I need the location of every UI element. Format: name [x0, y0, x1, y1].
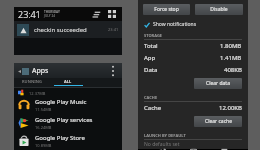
staticText: RUNNING [22, 79, 42, 84]
staticText: Disable [210, 6, 228, 13]
staticText: 1.80MB [220, 42, 242, 50]
staticText: ALL [64, 79, 72, 84]
button[interactable]: Show notifications [138, 20, 248, 29]
staticText: Force stop [154, 6, 179, 13]
staticText: Data [144, 66, 158, 74]
staticText: 11.54MB [35, 107, 52, 112]
staticText: Clear data [206, 80, 230, 87]
button[interactable]: Navigate up [17, 65, 29, 77]
button[interactable]: Recent apps [217, 149, 231, 150]
staticText: 10.89MB [35, 143, 52, 148]
button[interactable]: Back [155, 149, 169, 150]
staticText: 408KB [224, 66, 242, 74]
button[interactable]: Disable [195, 4, 243, 15]
staticText: App [144, 54, 156, 62]
staticText: Google Play Store [35, 134, 85, 142]
staticText: 12.37MB [29, 91, 46, 96]
button[interactable]: 12.37MB [14, 88, 122, 96]
button[interactable]: Quick settings [106, 8, 118, 20]
button[interactable]: Google Play Music [14, 96, 122, 114]
button[interactable]: Google Play services [14, 114, 122, 132]
button[interactable]: RUNNING [14, 78, 50, 87]
button[interactable]: More options [107, 65, 119, 77]
staticText: 1.41MB [220, 54, 242, 62]
staticText: 23:41 [108, 27, 119, 32]
staticText: Show notifications [153, 21, 197, 28]
staticText: THURSDAY [44, 10, 60, 14]
staticText: 23:41 [18, 8, 41, 20]
button[interactable]: Clear all notifications [90, 8, 102, 20]
staticText: Apps [32, 66, 49, 76]
staticText: checkin succeeded [34, 26, 87, 34]
staticText: STORAGE [144, 33, 163, 38]
staticText: CACHE [144, 95, 158, 100]
button[interactable]: ALL [50, 78, 86, 87]
staticText: Google Play Music [35, 98, 87, 106]
staticText: 16.24MB [35, 125, 52, 130]
staticText: No defaults set [144, 141, 180, 148]
staticText: LAUNCH BY DEFAULT [144, 133, 186, 138]
staticText: Google Play services [35, 116, 93, 124]
button[interactable]: checkin succeeded [14, 21, 122, 38]
button[interactable]: Home [186, 149, 200, 150]
staticText: Total [144, 42, 158, 50]
staticText: 12.00KB [219, 104, 242, 112]
button[interactable]: Clear cache [194, 116, 242, 127]
staticText: Clear cache [205, 118, 232, 125]
staticText: Cache [144, 104, 162, 112]
button[interactable]: Force stop [143, 4, 190, 15]
staticText: JULY 24 [44, 14, 55, 18]
button[interactable]: Clear data [194, 78, 242, 89]
button[interactable]: Google Play Store [14, 132, 122, 150]
